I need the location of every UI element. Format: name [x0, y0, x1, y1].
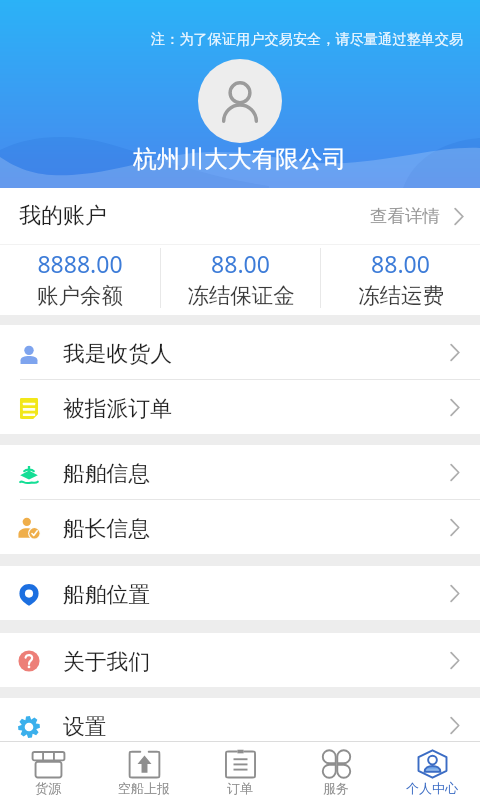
- button[interactable]: 关于我们: [0, 633, 480, 687]
- staticText: 账户余额: [37, 282, 123, 309]
- button[interactable]: 我的账户: [0, 188, 480, 244]
- button[interactable]: 船长信息: [0, 500, 480, 554]
- staticText: 我是收货人: [63, 340, 172, 367]
- button[interactable]: 88.00: [161, 248, 320, 309]
- staticText: 订单: [227, 780, 253, 796]
- staticText: 冻结运费: [358, 282, 444, 309]
- button[interactable]: 8888.00: [0, 248, 160, 309]
- staticText: 冻结保证金: [187, 282, 295, 309]
- staticText: 杭州川大大有限公司: [133, 144, 347, 174]
- button[interactable]: 订单: [192, 742, 288, 800]
- button[interactable]: 船舶位置: [0, 566, 480, 620]
- staticText: 88.00: [371, 248, 430, 279]
- staticText: 船舶信息: [63, 460, 151, 487]
- button[interactable]: 货源: [0, 742, 96, 800]
- staticText: 设置: [63, 713, 107, 740]
- button[interactable]: 88.00: [321, 248, 480, 309]
- button[interactable]: 设置: [0, 698, 480, 741]
- staticText: 注：为了保证用户交易安全，请尽量通过整单交易: [151, 30, 464, 48]
- staticText: 个人中心: [406, 780, 458, 796]
- button[interactable]: 船舶信息: [0, 445, 480, 499]
- staticText: 88.00: [211, 248, 270, 279]
- staticText: 被指派订单: [63, 395, 172, 422]
- button[interactable]: 空船上报: [96, 742, 192, 800]
- button[interactable]: 服务: [288, 742, 384, 800]
- staticText: 我的账户: [19, 202, 107, 230]
- staticText: 船舶位置: [63, 581, 151, 608]
- staticText: 查看详情: [370, 205, 440, 227]
- staticText: 空船上报: [118, 780, 170, 796]
- button[interactable]: 被指派订单: [0, 380, 480, 434]
- button[interactable]: 个人中心: [384, 742, 480, 800]
- staticText: 关于我们: [63, 648, 151, 675]
- button[interactable]: 我是收货人: [0, 325, 480, 379]
- staticText: 货源: [35, 780, 61, 796]
- staticText: 服务: [323, 780, 349, 796]
- staticText: 8888.00: [37, 248, 123, 279]
- staticText: 船长信息: [63, 515, 151, 542]
